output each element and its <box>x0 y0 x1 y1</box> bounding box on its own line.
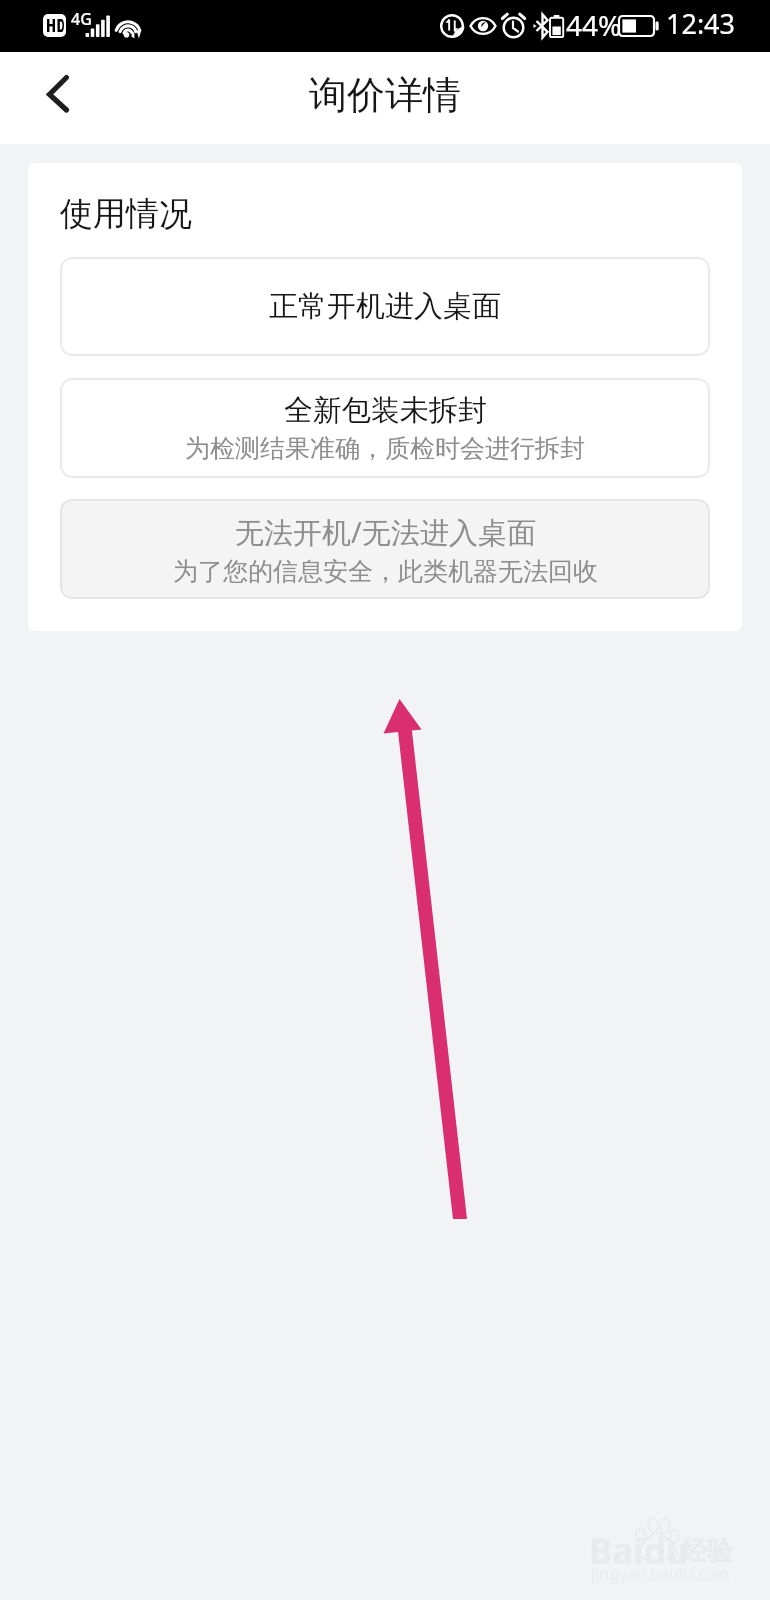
staticText: 正常开机进入桌面 <box>269 288 501 325</box>
staticText: 44% <box>566 6 622 44</box>
staticText: 询价详情 <box>309 71 461 119</box>
staticText: 无法开机/无法进入桌面 <box>235 512 536 552</box>
staticText: Baidu <box>589 1527 689 1575</box>
button[interactable]: 全新包装未拆封 <box>60 378 710 478</box>
button[interactable]: Back <box>14 63 100 133</box>
staticText: 全新包装未拆封 <box>284 392 487 429</box>
staticText: 为了您的信息安全，此类机器无法回收 <box>173 556 598 587</box>
staticText: 12:43 <box>666 5 736 42</box>
button[interactable]: 正常开机进入桌面 <box>60 257 710 356</box>
button[interactable]: 无法开机/无法进入桌面 <box>60 499 710 599</box>
staticText: 为检测结果准确，质检时会进行拆封 <box>185 433 585 464</box>
staticText: 经验 <box>681 1535 733 1568</box>
staticText: 4G <box>71 8 92 30</box>
staticText: 使用情况 <box>60 193 192 235</box>
